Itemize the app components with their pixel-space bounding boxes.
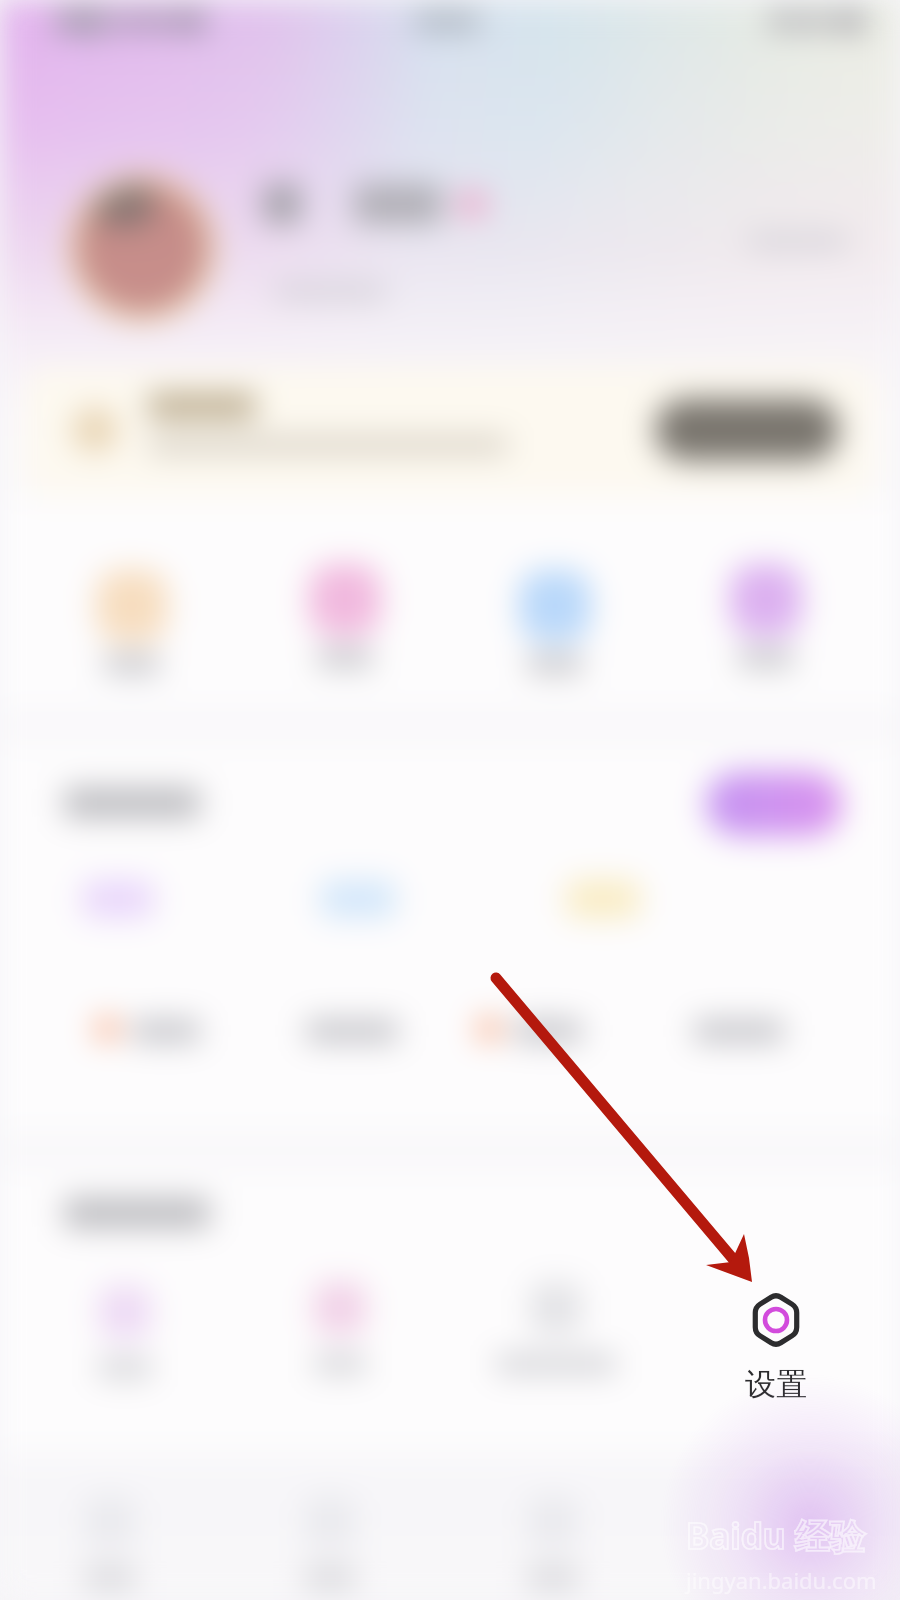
staticText: 设置 <box>745 1365 807 1404</box>
staticText: Baidu 经验 <box>686 1512 865 1560</box>
staticText: jingyan.baidu.com <box>686 1565 877 1595</box>
button[interactable]: 设置 <box>696 1292 856 1404</box>
other: 设置 <box>750 1292 802 1348</box>
